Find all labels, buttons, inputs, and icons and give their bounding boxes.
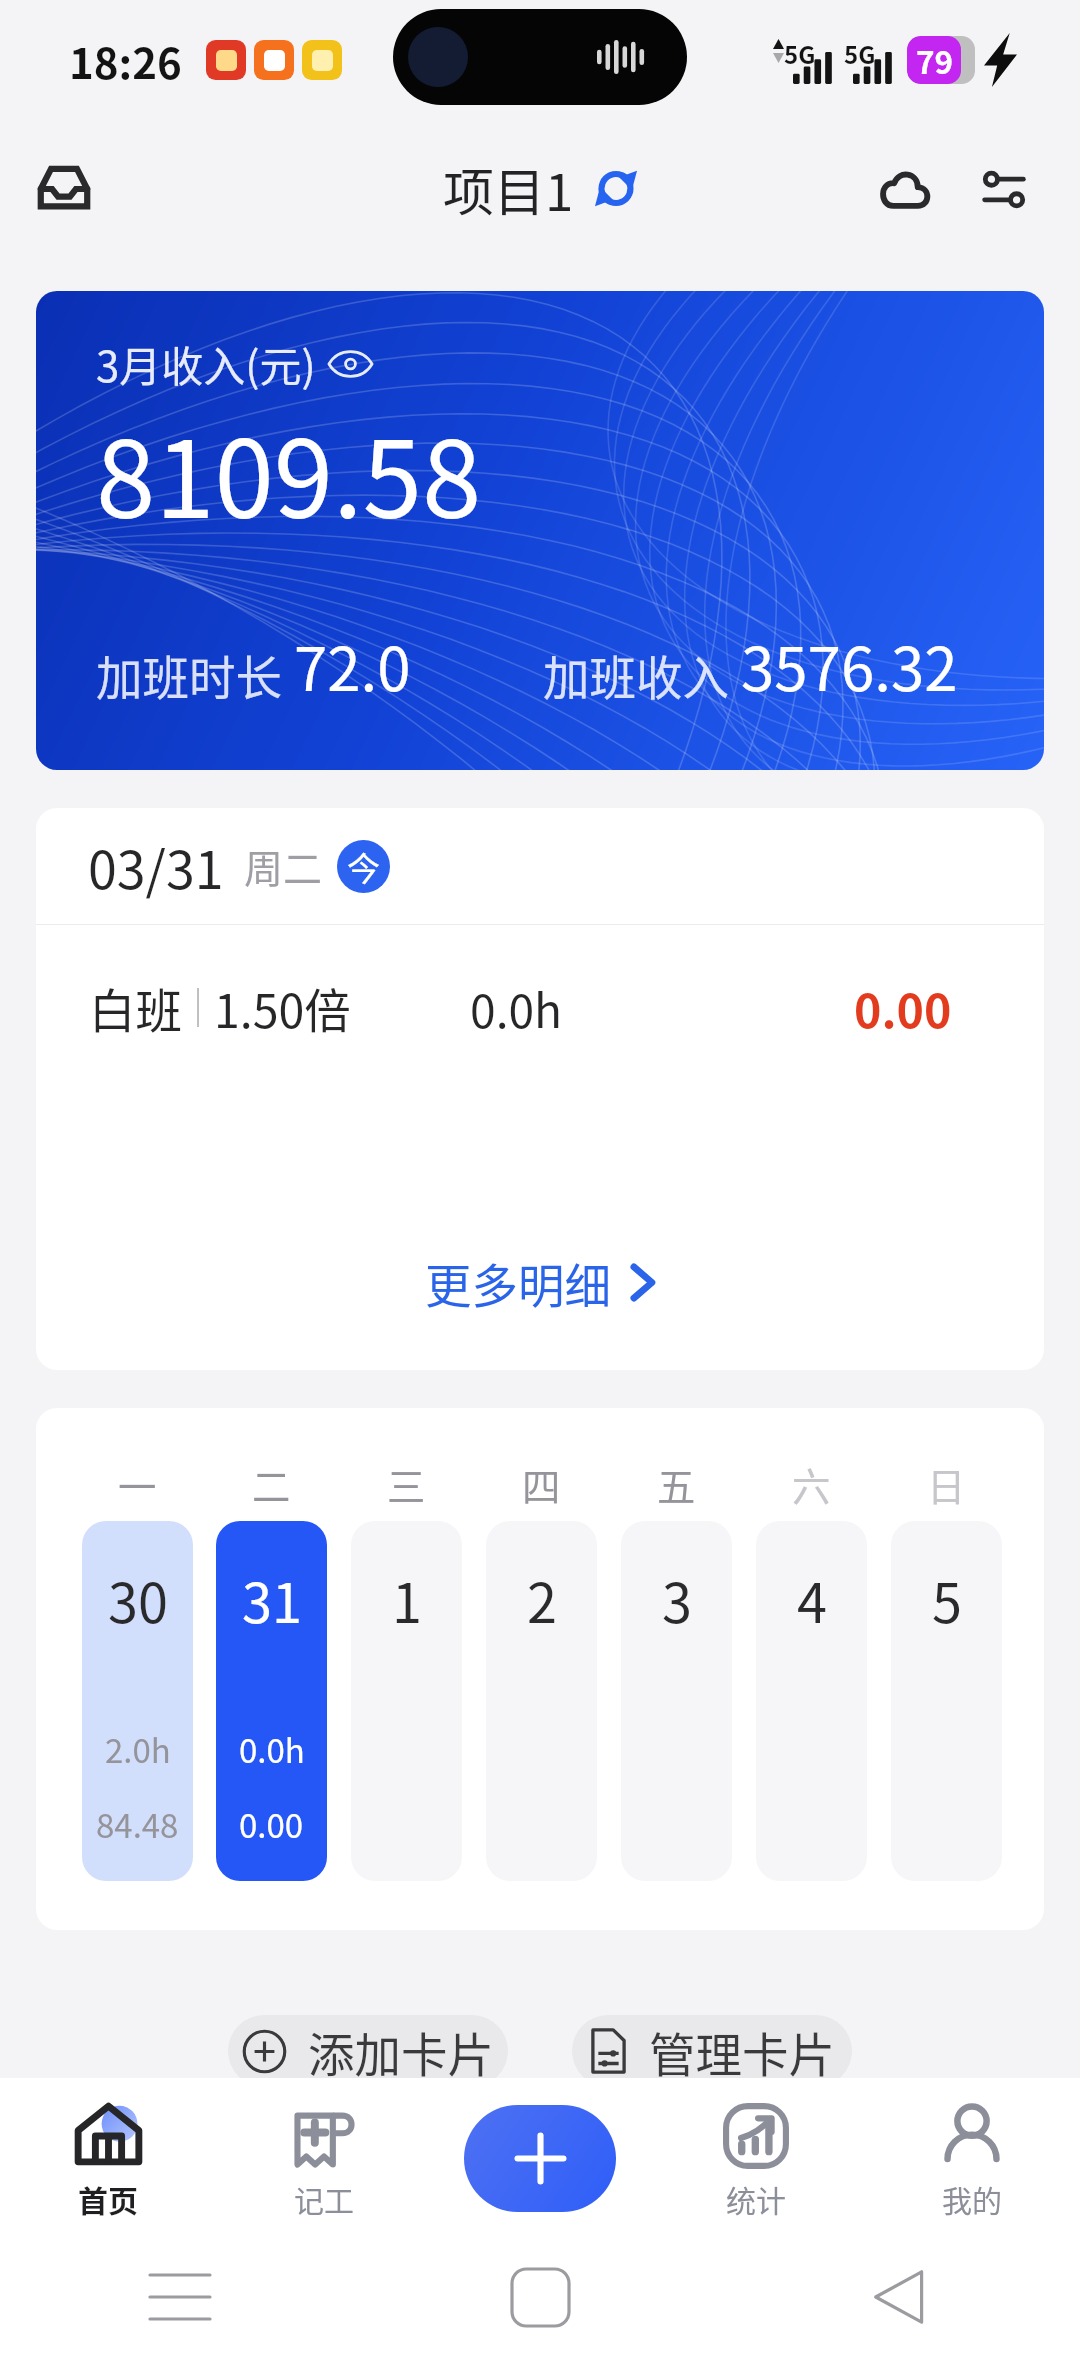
staticText: 周二 <box>244 838 323 894</box>
staticText: 今 <box>347 843 380 891</box>
button[interactable]: Add record <box>464 2105 616 2212</box>
staticText: 日 <box>927 1456 966 1512</box>
staticText: 五 <box>657 1456 696 1512</box>
staticText: 我的 <box>942 2177 1002 2220</box>
staticText: 3月收入(元) <box>96 333 316 394</box>
staticText: 2 <box>527 1560 557 1638</box>
staticText: 更多明细 <box>425 1249 611 1316</box>
staticText: 1.50倍 <box>214 974 351 1041</box>
staticText: 79 <box>916 37 954 83</box>
staticText: 3576.32 <box>741 621 958 708</box>
button[interactable]: Filter settings <box>954 123 1054 255</box>
button[interactable]: 31 <box>216 1521 327 1881</box>
staticText: 加班收入 <box>543 641 729 708</box>
staticText: 六 <box>792 1456 831 1512</box>
button[interactable]: Home <box>480 2237 600 2357</box>
button[interactable]: 更多明细 <box>425 1249 656 1316</box>
staticText: 31 <box>242 1560 302 1638</box>
button[interactable]: Back <box>840 2237 960 2357</box>
staticText: 84.48 <box>96 1800 179 1848</box>
button[interactable]: 管理卡片 <box>572 2015 852 2087</box>
staticText: 1 <box>392 1560 422 1638</box>
staticText: 8109.58 <box>96 394 482 549</box>
staticText: 一 <box>118 1456 157 1512</box>
button[interactable]: 1 <box>351 1521 462 1881</box>
staticText: 5G <box>784 36 816 71</box>
staticText: 白班 <box>89 974 182 1041</box>
button[interactable]: Inbox <box>0 123 130 255</box>
button[interactable]: Recents <box>120 2261 240 2333</box>
staticText: 添加卡片 <box>308 2018 494 2085</box>
staticText: 项目1 <box>443 152 574 226</box>
staticText: 03/31 <box>88 829 224 904</box>
button[interactable]: 统计 <box>648 2078 864 2222</box>
staticText: 30 <box>108 1560 168 1638</box>
staticText: 18:26 <box>69 30 182 91</box>
staticText: 四 <box>522 1456 561 1512</box>
staticText: 加班时长 <box>96 641 282 708</box>
button[interactable]: 添加卡片 <box>228 2015 508 2087</box>
staticText: 二 <box>252 1456 291 1512</box>
staticText: 0.00 <box>854 974 952 1041</box>
button[interactable]: 4 <box>756 1521 867 1881</box>
staticText: 2.0h <box>105 1725 171 1773</box>
staticText: 首页 <box>78 2177 138 2220</box>
staticText: 5 <box>932 1560 962 1638</box>
staticText: 0.0h <box>239 1725 305 1773</box>
staticText: 三 <box>387 1456 426 1512</box>
button[interactable]: Cloud backup <box>854 123 954 255</box>
button[interactable]: 5 <box>891 1521 1002 1881</box>
button[interactable]: 白班 <box>36 925 1044 1090</box>
staticText: 管理卡片 <box>649 2018 835 2085</box>
staticText: 5G <box>844 36 876 71</box>
staticText: 3 <box>662 1560 692 1638</box>
staticText: 4 <box>797 1560 827 1638</box>
button[interactable]: 首页 <box>0 2078 216 2222</box>
button[interactable]: 2 <box>486 1521 597 1881</box>
button[interactable]: 我的 <box>864 2078 1080 2222</box>
button[interactable]: 30 <box>82 1521 193 1881</box>
staticText: 统计 <box>726 2177 786 2220</box>
staticText: 0.00 <box>239 1800 304 1848</box>
button[interactable]: 3 <box>621 1521 732 1881</box>
staticText: 记工 <box>294 2177 354 2220</box>
button[interactable]: 项目1 <box>443 152 637 226</box>
button[interactable]: 3月收入(元) <box>36 291 1044 770</box>
staticText: 72.0 <box>294 621 411 708</box>
staticText: 0.0h <box>470 974 563 1041</box>
button[interactable]: 记工 <box>216 2078 432 2222</box>
